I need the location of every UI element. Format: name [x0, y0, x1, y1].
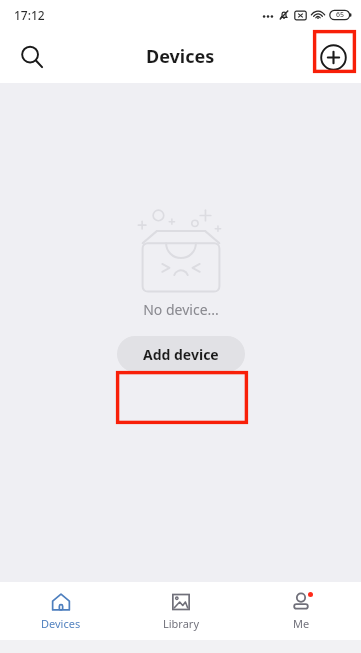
staticText: Devices: [41, 616, 81, 631]
button[interactable]: Library: [121, 582, 241, 640]
staticText: 17:12: [14, 7, 45, 23]
staticText: Devices: [146, 44, 215, 69]
staticText: Add device: [143, 345, 219, 364]
button[interactable]: Add device: [117, 336, 245, 372]
staticText: Library: [163, 616, 200, 631]
staticText: Me: [293, 616, 310, 631]
button[interactable]: Me: [241, 582, 361, 640]
staticText: No device...: [143, 300, 219, 319]
button[interactable]: Search: [12, 37, 52, 77]
button[interactable]: Devices: [0, 582, 121, 640]
staticText: 65: [336, 10, 345, 20]
button[interactable]: Add: [316, 40, 350, 74]
